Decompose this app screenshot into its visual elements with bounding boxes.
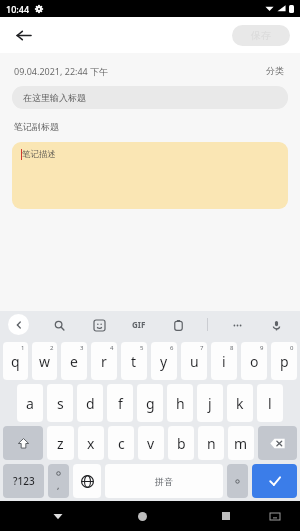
button[interactable]: o (241, 342, 267, 380)
button[interactable]: d (77, 384, 103, 422)
staticText: 6 (170, 344, 174, 352)
staticText: 4 (110, 344, 114, 352)
staticText: 在这里输入标题 (23, 92, 86, 103)
button[interactable]: t (121, 342, 147, 380)
staticText: 笔记副标题 (14, 121, 59, 132)
staticText: j (208, 394, 212, 413)
staticText: 9 (260, 344, 264, 352)
button[interactable]: Back (10, 22, 36, 48)
staticText: 09.04.2021, 22:44 下午 (14, 65, 109, 77)
staticText: 0 (290, 344, 294, 352)
button[interactable]: h (167, 384, 193, 422)
button[interactable]: Recents (214, 504, 238, 528)
staticText: 2 (50, 344, 54, 352)
button[interactable]: x (78, 426, 104, 460)
button[interactable]: 笔记描述 (12, 142, 288, 209)
staticText: g (146, 394, 155, 413)
staticText: 1 (21, 344, 25, 352)
staticText: m (234, 434, 248, 453)
button[interactable]: p (271, 342, 297, 380)
button[interactable]: Hide keyboard (46, 504, 70, 528)
button[interactable]: Search (49, 315, 69, 335)
button[interactable]: Shift (3, 426, 43, 460)
staticText: w (39, 352, 51, 371)
button[interactable]: Stickers (89, 315, 109, 335)
staticText: 分类 (266, 65, 284, 76)
button[interactable]: Period (227, 464, 248, 498)
staticText: l (268, 394, 272, 413)
button[interactable]: Backspace (258, 426, 297, 460)
button[interactable]: b (168, 426, 194, 460)
button[interactable]: 笔记副标题 (12, 121, 288, 132)
staticText: d (86, 394, 95, 413)
button[interactable]: 保存 (232, 25, 290, 46)
button[interactable]: a (17, 384, 43, 422)
button[interactable]: Voice input (266, 315, 286, 335)
staticText: n (207, 434, 216, 453)
button[interactable]: GIF (129, 316, 149, 333)
button[interactable]: Switch keyboard (265, 506, 285, 526)
staticText: 10:44 (6, 3, 30, 15)
button[interactable]: c (108, 426, 134, 460)
button[interactable]: q (3, 342, 28, 380)
staticText: r (101, 352, 107, 371)
button[interactable]: r (91, 342, 117, 380)
button[interactable]: Comma (48, 464, 69, 498)
staticText: ?123 (13, 474, 35, 488)
staticText: b (177, 434, 186, 453)
button[interactable]: l (257, 384, 283, 422)
button[interactable]: 在这里输入标题 (12, 86, 288, 109)
button[interactable]: ?123 (3, 464, 44, 498)
staticText: c (118, 434, 125, 453)
button[interactable]: i (211, 342, 237, 380)
staticText: 7 (200, 344, 204, 352)
staticText: s (57, 394, 64, 413)
button[interactable]: Clipboard (168, 315, 188, 335)
staticText: t (131, 352, 137, 371)
button[interactable]: Home (130, 504, 154, 528)
button[interactable]: f (107, 384, 133, 422)
button[interactable]: Enter (252, 464, 297, 498)
button[interactable]: e (61, 342, 87, 380)
staticText: e (70, 352, 78, 371)
staticText: 笔记描述 (22, 149, 56, 160)
button[interactable]: k (227, 384, 253, 422)
staticText: x (87, 434, 95, 453)
staticText: GIF (132, 319, 146, 330)
staticText: 3 (80, 344, 84, 352)
button[interactable]: 分类 (264, 63, 286, 78)
button[interactable]: j (197, 384, 223, 422)
button[interactable]: z (47, 426, 74, 460)
staticText: o (250, 352, 259, 371)
staticText: p (280, 352, 289, 371)
staticText: k (236, 394, 244, 413)
button[interactable]: s (47, 384, 73, 422)
button[interactable]: v (138, 426, 164, 460)
button[interactable]: Change language (73, 464, 101, 498)
staticText: f (118, 394, 123, 413)
staticText: z (57, 434, 64, 453)
button[interactable]: u (181, 342, 207, 380)
button[interactable]: w (32, 342, 57, 380)
staticText: u (190, 352, 199, 371)
button[interactable]: Collapse toolbar (8, 314, 29, 335)
staticText: q (11, 352, 20, 371)
button[interactable]: y (151, 342, 177, 380)
staticText: 保存 (251, 29, 271, 42)
staticText: v (147, 434, 155, 453)
staticText: i (222, 352, 226, 371)
staticText: 拼音 (155, 476, 173, 487)
staticText: , (57, 479, 60, 491)
staticText: 8 (230, 344, 234, 352)
staticText: 5 (140, 344, 144, 352)
button[interactable]: g (137, 384, 163, 422)
staticText: h (176, 394, 185, 413)
staticText: a (26, 394, 34, 413)
button[interactable]: 拼音 (105, 464, 223, 498)
button[interactable]: m (228, 426, 254, 460)
button[interactable]: More options (227, 315, 247, 335)
button[interactable]: n (198, 426, 224, 460)
staticText: y (160, 352, 168, 371)
